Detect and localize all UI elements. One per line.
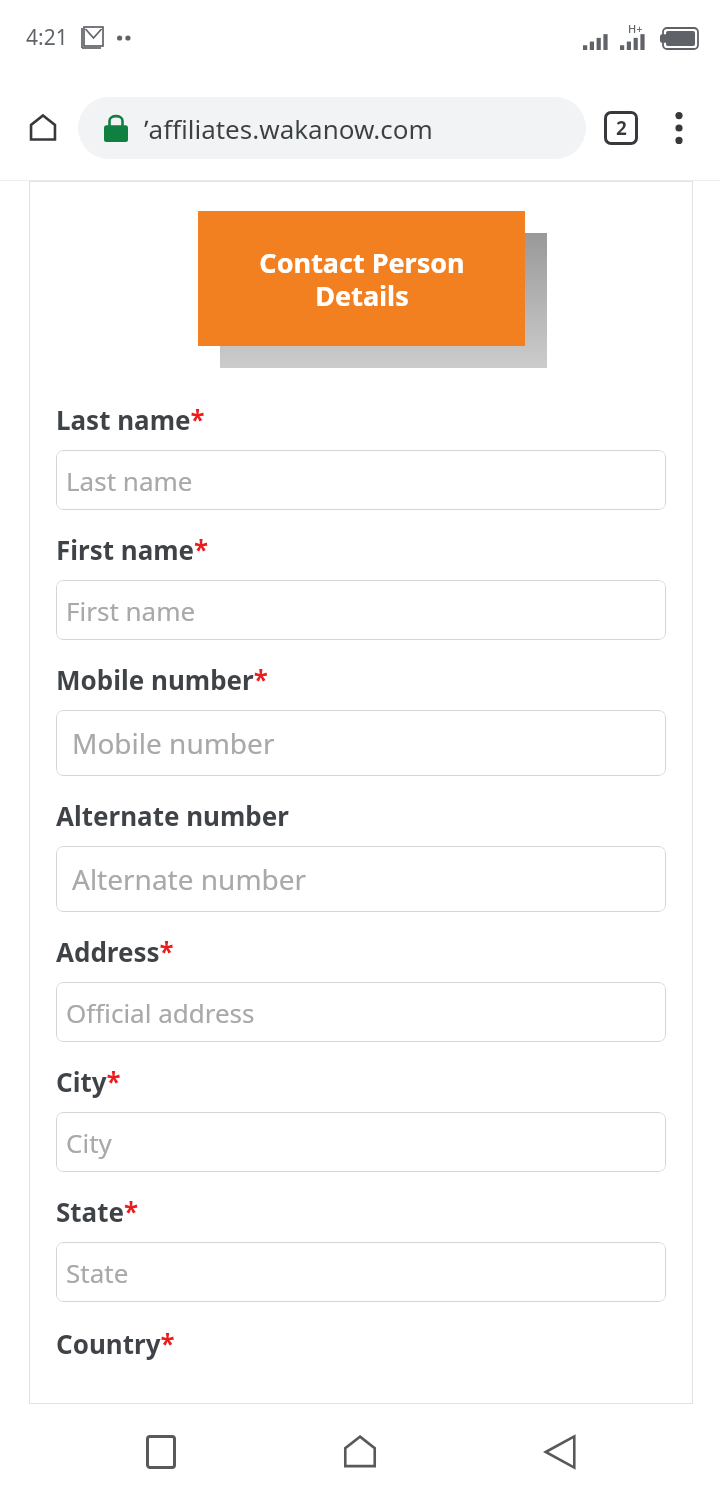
staticText: 2 [616, 115, 627, 141]
staticText: Mobile number [72, 724, 275, 762]
staticText: State* [56, 1194, 139, 1229]
staticText: City* [56, 1064, 121, 1099]
staticText: Mobile number* [56, 662, 268, 697]
button[interactable]: First name [56, 580, 666, 640]
staticText: ʹaffiliates.wakanow.com [144, 111, 433, 146]
button[interactable]: Home [14, 99, 72, 157]
staticText: Alternate number [72, 860, 307, 898]
button[interactable]: Back [521, 1413, 599, 1491]
staticText: City [66, 1125, 112, 1160]
staticText: Last name* [56, 402, 205, 437]
staticText: Alternate number [56, 798, 289, 833]
staticText: Official address [66, 995, 255, 1030]
staticText: Contact Person Details [259, 244, 465, 314]
staticText: State [66, 1255, 129, 1290]
staticText: H+ [628, 21, 643, 36]
staticText: Country* [56, 1326, 175, 1361]
button[interactable]: Contact Person Details [198, 211, 525, 346]
staticText: First name* [56, 532, 209, 567]
button[interactable]: Recent apps [122, 1413, 200, 1491]
staticText: Last name [66, 463, 193, 498]
staticText: 4:21 [26, 23, 68, 52]
button[interactable]: Official address [56, 982, 666, 1042]
button[interactable]: More options [652, 101, 706, 155]
button[interactable]: Tabs: 2 [594, 101, 648, 155]
staticText: Address* [56, 934, 174, 969]
button[interactable]: City [56, 1112, 666, 1172]
button[interactable]: Last name [56, 450, 666, 510]
button[interactable]: Alternate number [56, 846, 666, 912]
button[interactable]: Home [321, 1413, 399, 1491]
staticText: First name [66, 593, 196, 628]
button[interactable]: ʹaffiliates.wakanow.com [78, 97, 586, 159]
button[interactable]: Mobile number [56, 710, 666, 776]
button[interactable]: State [56, 1242, 666, 1302]
